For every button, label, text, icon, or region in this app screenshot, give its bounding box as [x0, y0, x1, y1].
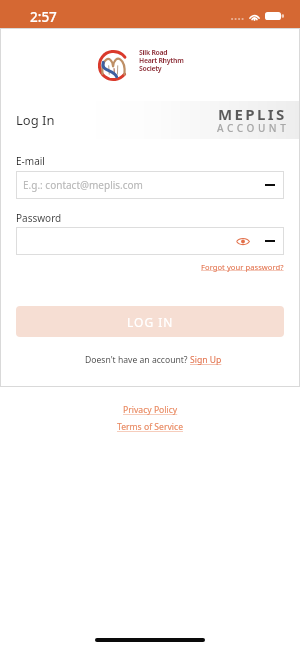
- button[interactable]: Forgot your password?: [201, 262, 284, 272]
- button[interactable]: E.g.: contact@meplis.com: [23, 171, 279, 199]
- button[interactable]: Clear: [261, 176, 279, 194]
- staticText: LOG IN: [127, 314, 174, 330]
- button[interactable]: Show password: [23, 227, 279, 255]
- staticText: Society: [139, 64, 162, 73]
- staticText: Forgot your password?: [201, 262, 284, 272]
- staticText: Terms of Service: [117, 421, 184, 433]
- staticText: Log In: [16, 111, 55, 129]
- staticText: Privacy Policy: [123, 404, 178, 416]
- staticText: Silk Road: [139, 48, 168, 57]
- staticText: E.g.: contact@meplis.com: [23, 178, 143, 192]
- staticText: 2:57: [30, 8, 57, 26]
- button[interactable]: Show password: [234, 232, 252, 250]
- staticText: Doesn't have an account?: [85, 354, 190, 366]
- staticText: Password: [16, 211, 62, 225]
- button[interactable]: Terms of Service: [117, 421, 184, 433]
- staticText: E-mail: [16, 154, 45, 168]
- staticText: MEPLIS: [218, 104, 287, 124]
- button[interactable]: Sign Up: [190, 354, 222, 366]
- staticText: Sign Up: [190, 354, 222, 366]
- button[interactable]: LOG IN: [16, 306, 284, 337]
- button[interactable]: Privacy Policy: [123, 404, 178, 416]
- staticText: ACCOUNT: [217, 121, 290, 135]
- button[interactable]: Clear: [261, 232, 279, 250]
- staticText: Heart Rhythm: [139, 56, 184, 65]
